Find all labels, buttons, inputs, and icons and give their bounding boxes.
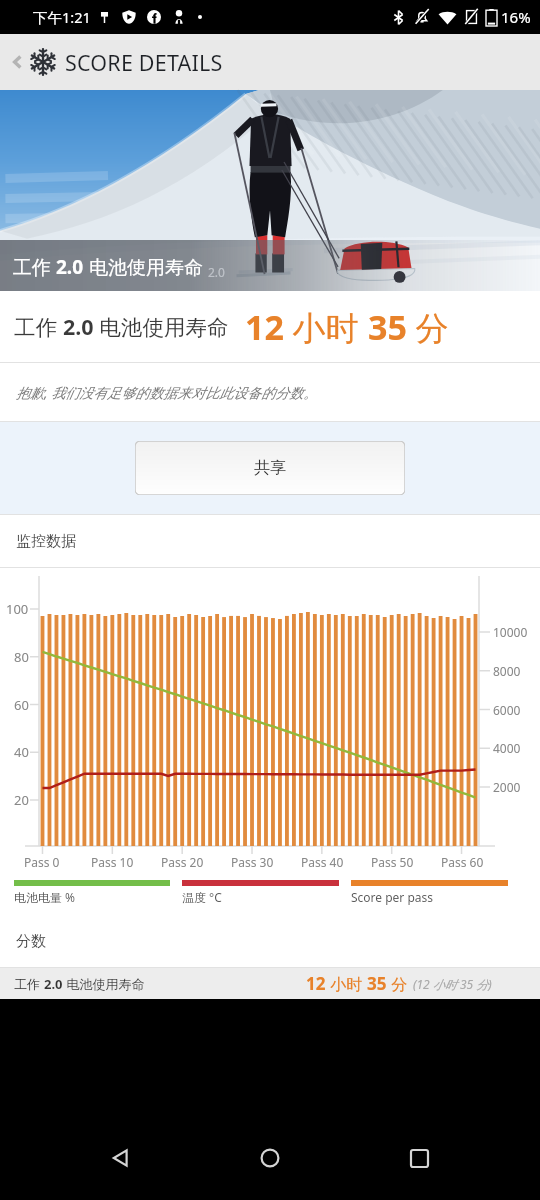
staticText: 40 [14, 743, 29, 761]
staticText: 2.0 [56, 254, 84, 280]
staticText: 10000 [493, 624, 528, 640]
button[interactable]: Back [0, 34, 540, 90]
staticText: 2.0 [208, 264, 225, 280]
staticText: Pass 60 [441, 854, 484, 870]
staticText: 温度 °C [182, 889, 222, 905]
staticText: 2000 [493, 779, 521, 795]
staticText: 60 [14, 696, 29, 714]
staticText: (12 小时 35 分) [413, 976, 492, 992]
staticText: 4000 [493, 740, 521, 756]
staticText: Pass 50 [371, 854, 414, 870]
staticText: 监控数据 [16, 532, 76, 551]
staticText: 抱歉, 我们没有足够的数据来对比此设备的分数。 [16, 383, 318, 402]
button[interactable]: 工作 [0, 968, 540, 999]
other: Back [8, 52, 28, 72]
staticText: 分 [387, 973, 408, 995]
staticText: 2.0 [44, 975, 63, 993]
staticText: 共享 [254, 458, 286, 478]
staticText: 100 [6, 600, 29, 618]
staticText: 80 [14, 648, 29, 666]
staticText: Pass 10 [91, 854, 134, 870]
staticText: 8000 [493, 663, 521, 679]
staticText: 工作 [13, 254, 56, 280]
staticText: 12 [245, 304, 284, 350]
staticText: 工作 [14, 975, 44, 993]
staticText: Pass 20 [161, 854, 204, 870]
staticText: 电池使用寿命 [84, 254, 203, 280]
staticText: 12 [306, 972, 326, 995]
button[interactable]: 共享 [135, 441, 405, 495]
staticText: 6000 [493, 702, 521, 718]
button[interactable]: Home [242, 1130, 298, 1186]
staticText: Pass 30 [231, 854, 274, 870]
staticText: 小时 [326, 973, 367, 995]
staticText: 电池使用寿命 [63, 975, 145, 993]
staticText: 小时 [284, 305, 368, 350]
staticText: 下午1:21 [33, 7, 91, 27]
staticText: 35 [367, 972, 387, 995]
staticText: SCORE DETAILS [65, 48, 223, 77]
staticText: 分数 [16, 932, 46, 951]
staticText: 20 [14, 791, 29, 809]
staticText: 工作 [14, 312, 63, 341]
staticText: Pass 0 [24, 854, 60, 870]
staticText: 16% [501, 7, 531, 27]
staticText: 2.0 [63, 312, 94, 341]
staticText: Score per pass [351, 889, 434, 905]
staticText: 电池使用寿命 [94, 312, 229, 341]
staticText: 电池电量 % [14, 889, 76, 905]
staticText: 35 [368, 304, 407, 350]
button[interactable]: Recent apps [391, 1130, 447, 1186]
button[interactable]: Back [93, 1130, 149, 1186]
staticText: Pass 40 [301, 854, 344, 870]
staticText: 分 [407, 305, 449, 350]
